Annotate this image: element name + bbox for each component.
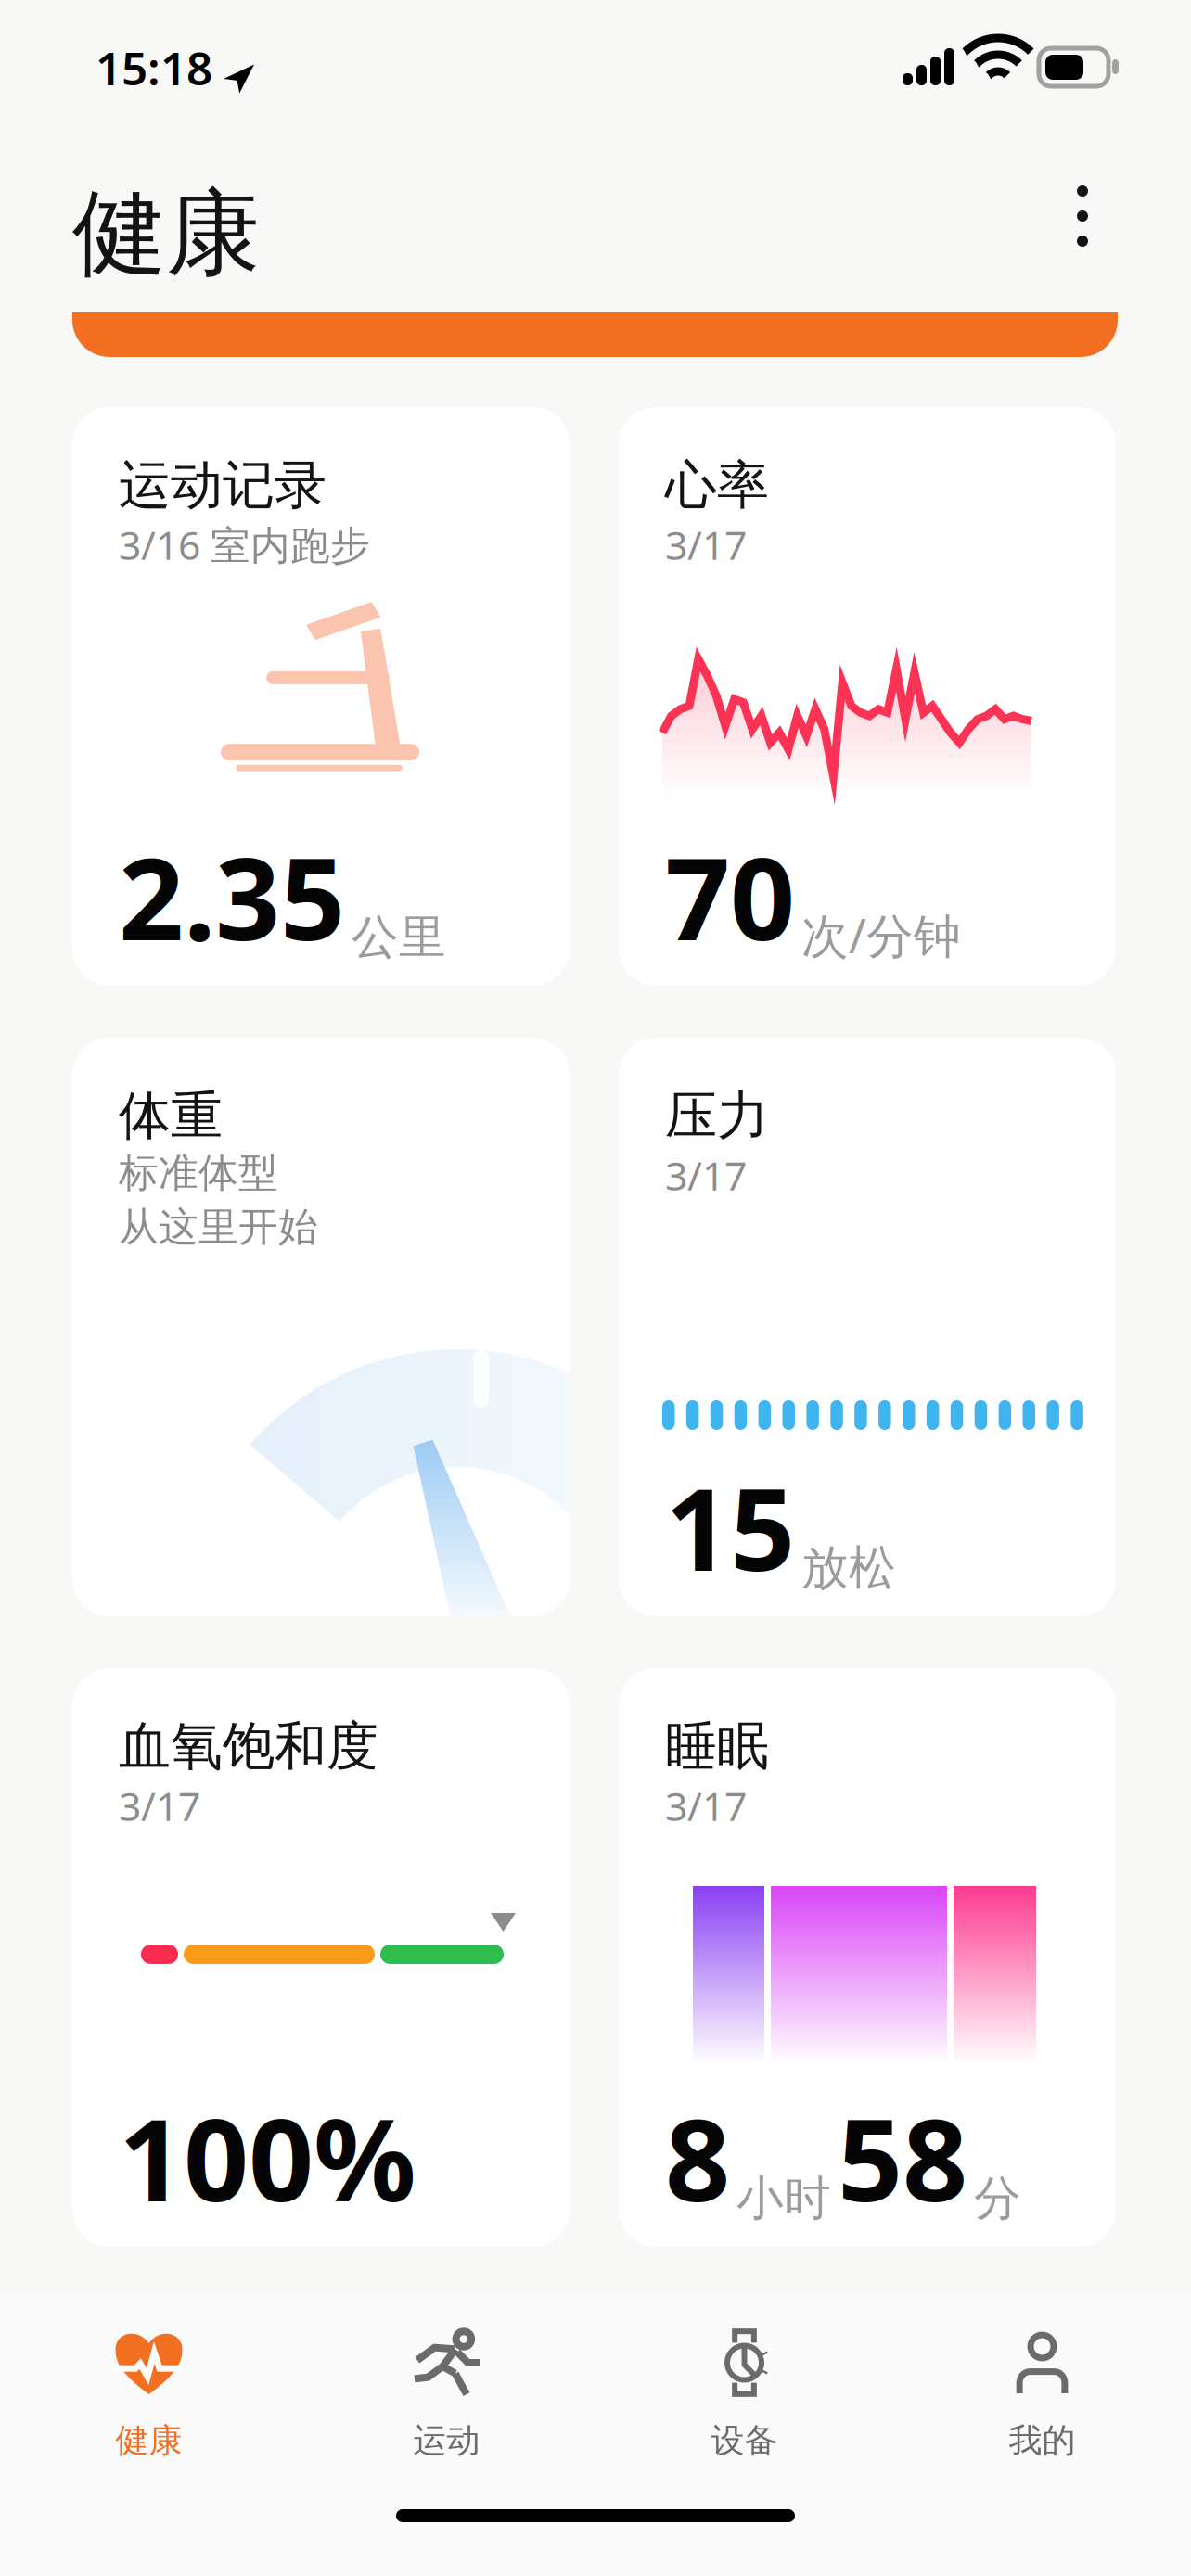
staticText: 70 (665, 821, 795, 972)
button[interactable]: 我的 (893, 2292, 1191, 2576)
staticText: 设备 (711, 2420, 778, 2461)
staticText: 公里 (352, 908, 446, 966)
staticText: 从这里开始 (119, 1203, 318, 1251)
staticText: 健康 (115, 2420, 182, 2461)
staticText: 小时 (736, 2170, 831, 2227)
button[interactable]: 血氧饱和度 (72, 1668, 570, 2247)
button[interactable]: 运动记录 (72, 407, 570, 986)
button[interactable]: 运动 (298, 2292, 595, 2576)
staticText: 次/分钟 (801, 904, 961, 966)
staticText: 心率 (665, 453, 769, 517)
button[interactable]: 更多 (1046, 165, 1119, 267)
button[interactable]: 健康 (0, 2292, 298, 2576)
staticText: 放松 (801, 1539, 896, 1597)
staticText: 血氧饱和度 (119, 1715, 378, 1778)
staticText: 100% (119, 2082, 416, 2233)
staticText: 58 (838, 2082, 967, 2233)
staticText: 健康 (72, 176, 260, 292)
staticText: 运动 (413, 2420, 480, 2461)
staticText: 分 (974, 2170, 1021, 2227)
staticText: 我的 (1009, 2420, 1076, 2461)
staticText: 15:18 (96, 37, 212, 98)
button[interactable]: 压力 (619, 1038, 1116, 1616)
staticText: 标准体型 (119, 1149, 278, 1197)
staticText: 3/17 (665, 518, 747, 571)
staticText: 2.35 (119, 821, 345, 972)
staticText: 3/17 (665, 1779, 747, 1832)
staticText: 压力 (665, 1084, 769, 1148)
staticText: 运动记录 (119, 453, 327, 517)
staticText: 3/17 (119, 1779, 200, 1832)
staticText: 体重 (119, 1084, 223, 1148)
button[interactable]: 体重 (72, 1038, 570, 1616)
staticText: 15 (665, 1451, 795, 1602)
button[interactable]: 心率 (619, 407, 1116, 986)
button[interactable]: 睡眠 (619, 1668, 1116, 2247)
staticText: 睡眠 (665, 1715, 769, 1778)
staticText: 3/17 (665, 1149, 747, 1201)
staticText: 8 (665, 2082, 730, 2233)
staticText: 3/16 室内跑步 (119, 518, 370, 571)
button[interactable]: 设备 (595, 2292, 893, 2576)
